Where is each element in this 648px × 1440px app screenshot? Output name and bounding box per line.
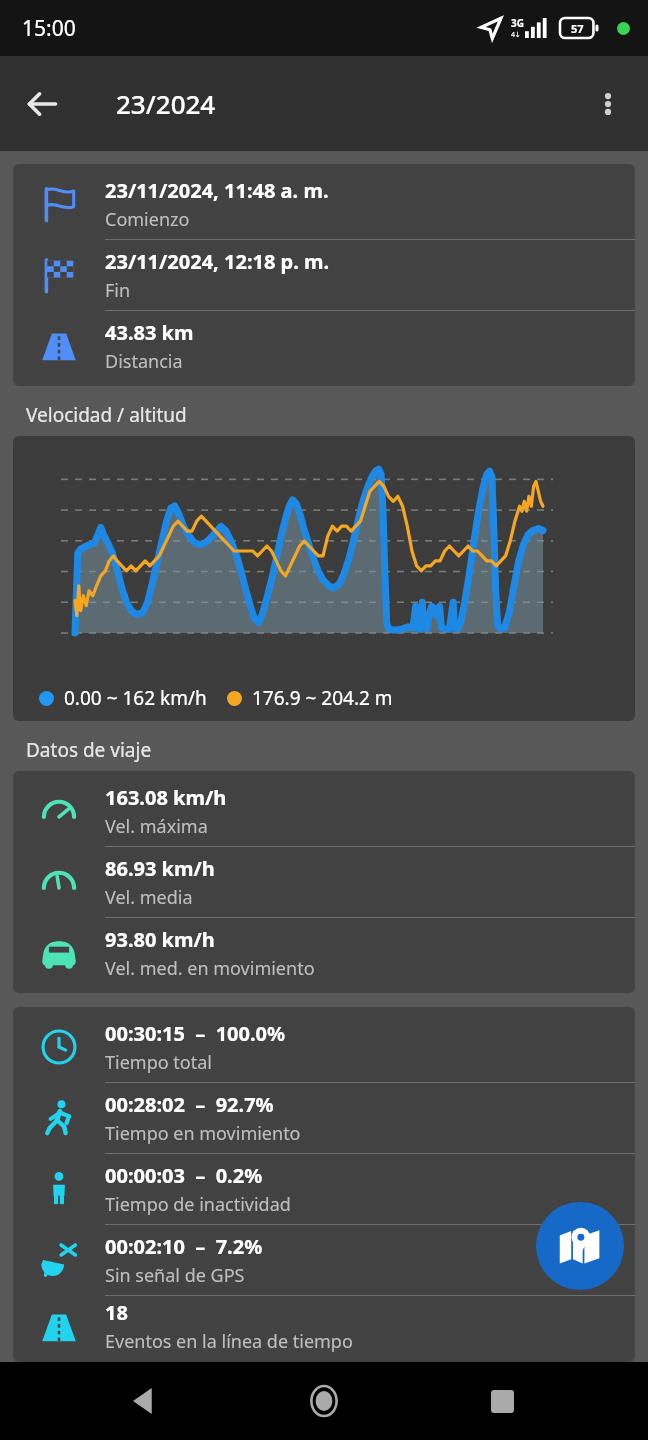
staticText: Fin bbox=[105, 278, 131, 303]
staticText: 23/11/2024, 11:48 a. m. bbox=[105, 177, 329, 204]
staticText: Datos de viaje bbox=[26, 737, 152, 763]
staticText: Sin señal de GPS bbox=[105, 1263, 245, 1288]
staticText: 00:28:02 – 92.7% bbox=[105, 1091, 274, 1118]
button[interactable]: Más opciones bbox=[578, 74, 638, 134]
staticText: 4↓ bbox=[511, 30, 521, 40]
button[interactable]: 23/11/2024, 11:48 a. m. bbox=[13, 169, 635, 240]
button[interactable]: 43.83 km bbox=[13, 311, 635, 381]
staticText: 43.83 km bbox=[105, 319, 194, 346]
staticText: 0.00 ~ 162 km/h bbox=[64, 685, 207, 711]
button[interactable]: 00:28:02 – 92.7% bbox=[13, 1083, 635, 1154]
staticText: Vel. media bbox=[105, 885, 193, 910]
button[interactable]: 00:00:03 – 0.2% bbox=[13, 1154, 635, 1225]
staticText: 3G bbox=[511, 16, 524, 30]
button[interactable]: 23/11/2024, 12:18 p. m. bbox=[13, 240, 635, 311]
staticText: 15:00 bbox=[22, 14, 76, 43]
button[interactable]: Ver mapa bbox=[536, 1202, 624, 1290]
staticText: Comienzo bbox=[105, 207, 190, 232]
button[interactable]: Inicio bbox=[292, 1369, 356, 1433]
button[interactable]: 163.08 km/h bbox=[13, 776, 635, 847]
staticText: 00:02:10 – 7.2% bbox=[105, 1233, 263, 1260]
staticText: 00:30:15 – 100.0% bbox=[105, 1020, 286, 1047]
staticText: 57 bbox=[571, 21, 584, 36]
staticText: Tiempo en movimiento bbox=[105, 1121, 301, 1146]
staticText: Vel. máxima bbox=[105, 814, 208, 839]
button[interactable]: 00:30:15 – 100.0% bbox=[13, 1012, 635, 1083]
staticText: 23/2024 bbox=[116, 86, 216, 121]
staticText: 18 bbox=[105, 1299, 128, 1326]
button[interactable]: Atrás bbox=[114, 1369, 178, 1433]
staticText: 86.93 km/h bbox=[105, 855, 215, 882]
button[interactable]: 93.80 km/h bbox=[13, 918, 635, 988]
staticText: Velocidad / altitud bbox=[26, 402, 187, 428]
button[interactable]: 00:02:10 – 7.2% bbox=[13, 1225, 635, 1296]
staticText: Distancia bbox=[105, 349, 183, 374]
staticText: 163.08 km/h bbox=[105, 784, 227, 811]
staticText: 00:00:03 – 0.2% bbox=[105, 1162, 263, 1189]
staticText: Vel. med. en movimiento bbox=[105, 956, 315, 981]
staticText: 23/11/2024, 12:18 p. m. bbox=[105, 248, 330, 275]
button[interactable]: 86.93 km/h bbox=[13, 847, 635, 918]
button[interactable]: 18 bbox=[13, 1296, 635, 1357]
button[interactable]: Atrás bbox=[10, 72, 74, 136]
staticText: Tiempo total bbox=[105, 1050, 212, 1075]
button[interactable]: Recientes bbox=[470, 1369, 534, 1433]
staticText: Eventos en la línea de tiempo bbox=[105, 1329, 353, 1354]
staticText: 93.80 km/h bbox=[105, 926, 215, 953]
button[interactable]: 0.00 ~ 162 km/h bbox=[13, 436, 635, 721]
staticText: Tiempo de inactividad bbox=[105, 1192, 291, 1217]
staticText: 176.9 ~ 204.2 m bbox=[252, 685, 393, 711]
